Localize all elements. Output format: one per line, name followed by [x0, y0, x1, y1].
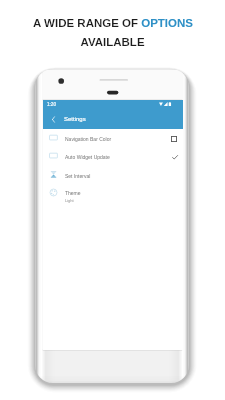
staticText: Set Interval: [65, 173, 91, 179]
staticText: A WIDE RANGE OF OPTIONS: [33, 17, 193, 30]
button[interactable]: Navigation Bar Color: [43, 130, 183, 148]
staticText: AVAILABLE: [80, 36, 145, 49]
staticText: 1:20: [47, 102, 56, 107]
staticText: Auto Widget Update: [65, 154, 110, 160]
staticText: Navigation Bar Color: [65, 136, 112, 142]
staticText: Theme: [65, 190, 81, 196]
button[interactable]: Auto Widget Update: [43, 148, 183, 166]
button[interactable]: Set Interval: [43, 167, 183, 185]
button[interactable]: Navigate up: [45, 112, 60, 127]
button[interactable]: Theme: [43, 185, 183, 203]
staticText: Settings: [64, 116, 86, 123]
staticText: Light: [65, 198, 74, 202]
